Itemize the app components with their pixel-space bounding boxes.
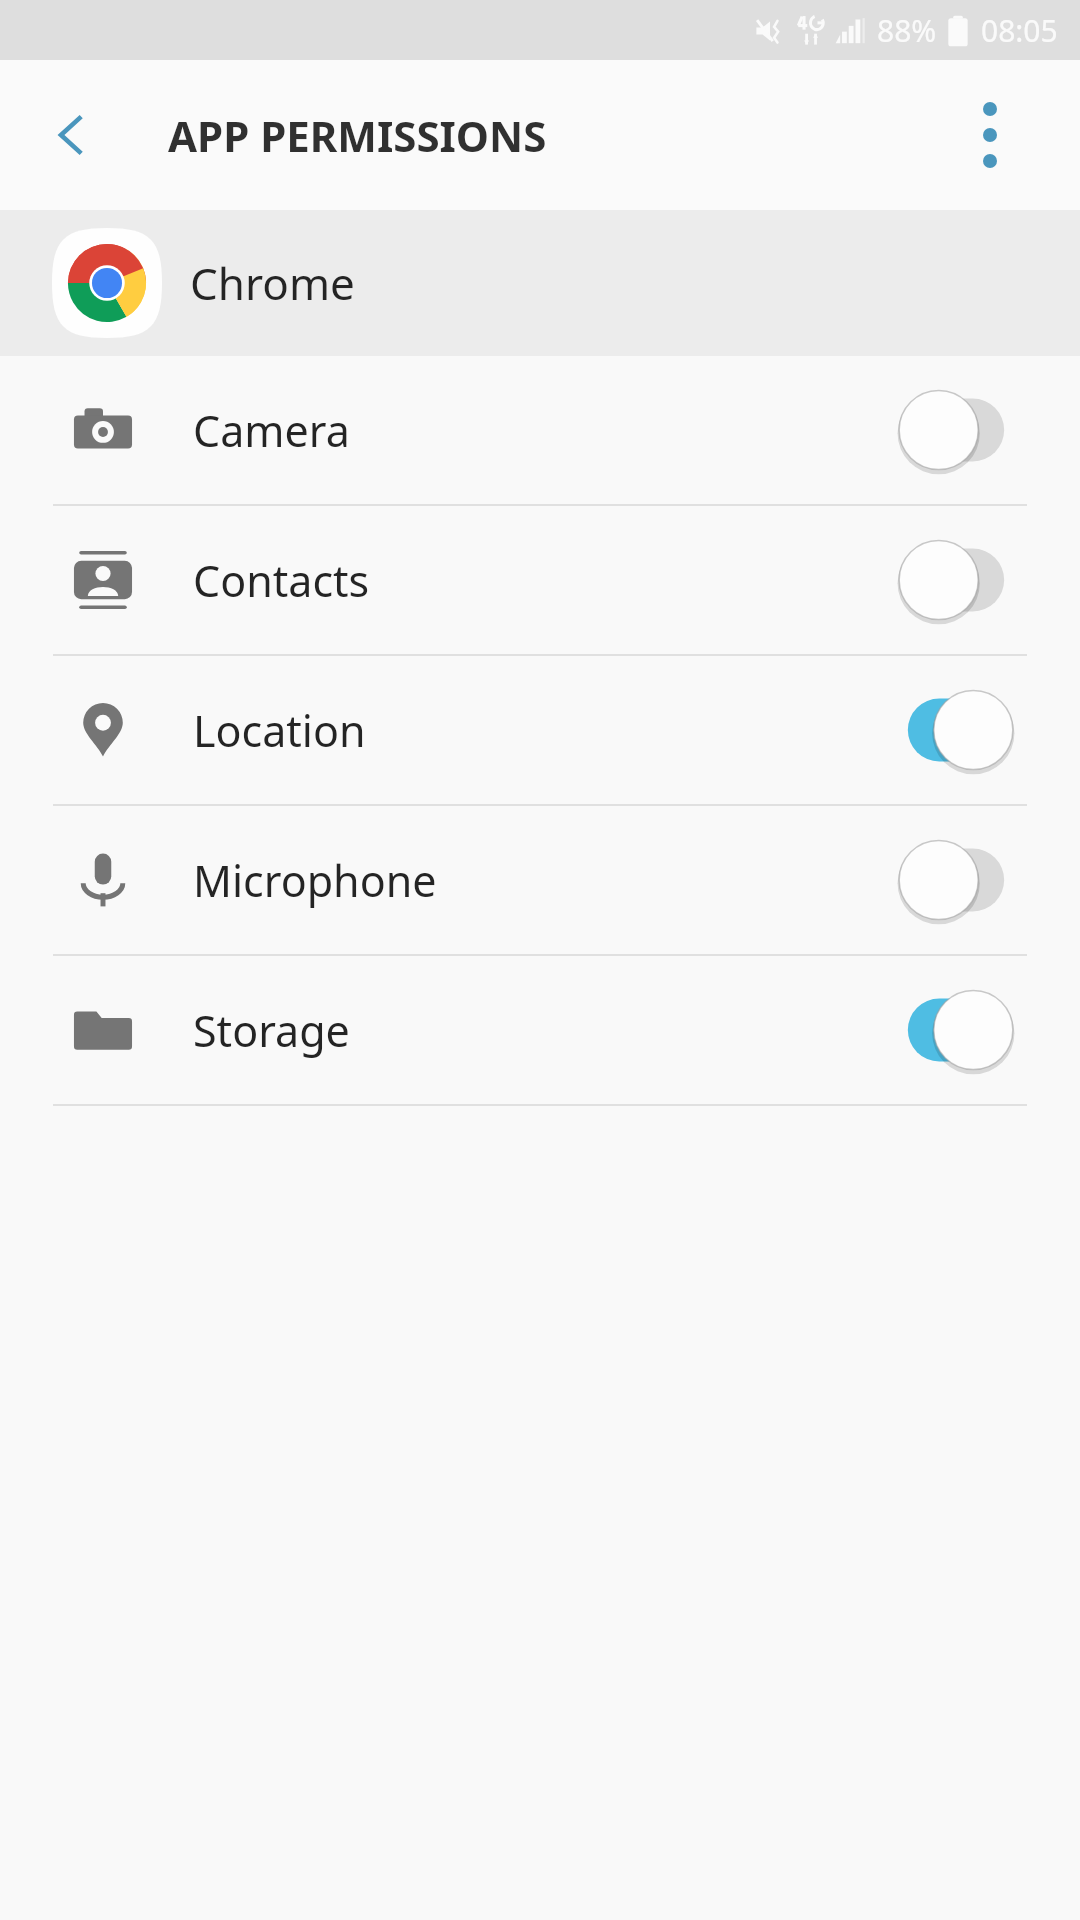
staticText: Chrome [190,253,355,313]
button[interactable]: Chrome [0,210,1080,356]
button[interactable]: Contacts permission toggle [897,532,1015,628]
button[interactable]: Camera [0,356,1080,504]
button[interactable]: More options [945,90,1035,180]
button[interactable]: Storage [0,956,1080,1104]
button[interactable]: Location [0,656,1080,804]
button[interactable]: Navigate up [24,87,120,183]
staticText: Storage [193,1001,897,1060]
button[interactable]: Microphone permission toggle [897,832,1015,928]
staticText: Contacts [193,551,897,610]
staticText: 88% [877,10,937,51]
staticText: Microphone [193,851,897,910]
button[interactable]: Location permission toggle [897,682,1015,778]
button[interactable]: Contacts [0,506,1080,654]
button[interactable]: Microphone [0,806,1080,954]
staticText: Location [193,701,897,760]
button[interactable]: Camera permission toggle [897,382,1015,478]
button[interactable]: Storage permission toggle [897,982,1015,1078]
staticText: 08:05 [981,10,1058,51]
staticText: Camera [193,401,897,460]
staticText: APP PERMISSIONS [168,107,547,164]
